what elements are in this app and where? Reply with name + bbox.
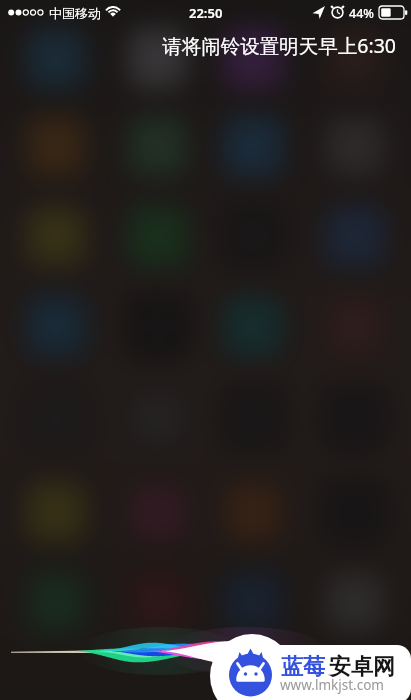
staticText: 安卓网 [329,653,395,681]
staticText: 请将闹铃设置明天早上6:30 [162,32,396,59]
other: 蓝莓安卓网 www.lmkjst.com [0,0,411,700]
staticText: 蓝莓 [281,653,325,681]
staticText: 44% [349,5,374,22]
staticText: www.lmkjst.com [280,676,384,694]
staticText: 22:50 [189,4,223,22]
staticText: 中国移动 [49,5,101,21]
